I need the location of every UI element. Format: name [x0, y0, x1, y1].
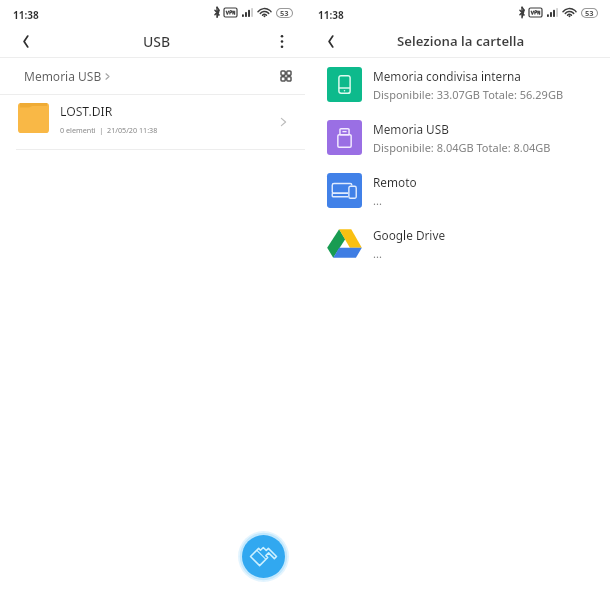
- staticText: Seleziona la cartella: [397, 32, 525, 50]
- button[interactable]: Back: [8, 25, 44, 57]
- staticText: 11:38: [13, 8, 39, 22]
- staticText: 53: [280, 8, 289, 18]
- button[interactable]: More options: [264, 25, 300, 57]
- staticText: Disponibile: 33.07GB Totale: 56.29GB: [373, 87, 564, 102]
- button[interactable]: Memoria USB: [305, 111, 610, 164]
- staticText: Memoria condivisa interna: [373, 68, 521, 84]
- button[interactable]: Memoria condivisa interna: [305, 58, 610, 111]
- staticText: ...: [373, 193, 382, 208]
- button[interactable]: Grid view: [274, 64, 298, 88]
- button[interactable]: Clean up: [242, 535, 285, 578]
- button[interactable]: Memoria USB: [24, 68, 110, 84]
- button[interactable]: Google Drive: [305, 217, 610, 270]
- staticText: Memoria USB: [24, 68, 102, 84]
- button[interactable]: Remoto: [305, 164, 610, 217]
- staticText: Google Drive: [373, 227, 446, 243]
- staticText: Disponibile: 8.04GB Totale: 8.04GB: [373, 140, 551, 155]
- staticText: ...: [373, 246, 382, 261]
- staticText: 0 elementi | 21/05/20 11:38: [60, 125, 158, 135]
- staticText: Memoria USB: [373, 121, 449, 137]
- button[interactable]: Back: [313, 25, 349, 57]
- staticText: Remoto: [373, 174, 417, 190]
- staticText: 11:38: [318, 8, 344, 22]
- button[interactable]: LOST.DIR: [0, 95, 305, 149]
- staticText: USB: [143, 32, 171, 51]
- staticText: 53: [585, 8, 594, 18]
- staticText: LOST.DIR: [60, 103, 113, 120]
